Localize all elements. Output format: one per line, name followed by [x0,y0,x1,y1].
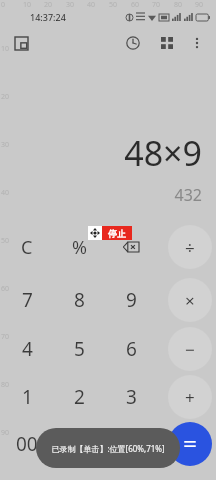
button[interactable]: ÷ [168,225,212,269]
button[interactable]: 2 [55,376,103,418]
button[interactable]: 7 [3,279,51,321]
staticText: 50 [1,236,10,246]
staticText: 40 [1,188,10,198]
staticText: 20 [1,92,10,102]
button[interactable]: Picture in picture [10,32,32,54]
staticText: 40 [87,0,96,10]
staticText: C [21,235,33,260]
button[interactable]: Backspace [114,230,148,264]
button[interactable]: 1 [3,376,51,418]
staticText: 7 [22,287,33,313]
button[interactable]: More options [184,30,210,56]
staticText: 2 [74,384,85,410]
button[interactable]: 0 [55,423,103,465]
button[interactable]: 5 [55,328,103,370]
staticText: 8 [74,287,85,313]
button[interactable]: C [3,226,51,268]
staticText: 60 [131,0,140,10]
staticText: . [128,431,134,457]
button[interactable]: Move [88,226,102,240]
staticText: 10 [1,44,10,54]
staticText: 停止 [108,228,126,239]
button[interactable]: 00 [3,423,51,465]
staticText: 0 [1,0,6,10]
staticText: − [185,338,195,361]
button[interactable]: − [168,327,212,371]
staticText: 14:37:24 [30,11,66,23]
staticText: 20 [44,0,53,10]
staticText: 6 [126,336,137,362]
staticText: 50 [109,0,118,10]
staticText: + [185,386,195,409]
staticText: 60 [1,284,10,294]
staticText: 1 [22,384,33,410]
staticText: 已录制【单击】:位置[60%,71%] [51,443,165,454]
staticText: 70 [1,332,10,342]
staticText: 80 [1,380,10,390]
staticText: ÷ [185,236,195,259]
staticText: 432 [174,184,202,206]
button[interactable]: + [168,375,212,419]
staticText: % [72,235,87,260]
staticText: 30 [1,140,10,150]
staticText: 0 [74,431,85,457]
button[interactable]: × [168,278,212,322]
staticText: 90 [195,0,204,10]
button[interactable]: 3 [107,376,155,418]
staticText: 4 [22,336,33,362]
staticText: 5 [74,336,85,362]
staticText: 00 [16,431,38,457]
button[interactable]: History [120,30,146,56]
button[interactable]: 9 [107,279,155,321]
button[interactable]: 停止 [102,226,132,240]
staticText: 90 [1,428,10,438]
staticText: 48×9 [124,130,202,176]
staticText: 10 [23,0,32,10]
button[interactable]: . [107,423,155,465]
staticText: 3 [126,384,137,410]
staticText: 9 [126,287,137,313]
button[interactable]: % [55,226,103,268]
button[interactable]: Equals [168,422,212,466]
staticText: 30 [66,0,75,10]
button[interactable]: 8 [55,279,103,321]
button[interactable]: 4 [3,328,51,370]
staticText: × [185,289,195,312]
button[interactable]: Scientific mode [154,30,180,56]
staticText: 70 [152,0,161,10]
staticText: 80 [174,0,183,10]
button[interactable]: 6 [107,328,155,370]
